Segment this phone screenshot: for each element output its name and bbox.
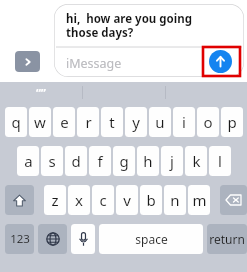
staticText: r (85, 112, 92, 132)
staticText: f (97, 151, 103, 171)
staticText: s (48, 151, 56, 171)
button[interactable]: o (197, 107, 219, 137)
button[interactable]: s (41, 146, 63, 176)
staticText: z (51, 190, 59, 210)
staticText: space (135, 231, 168, 247)
button[interactable]: q (5, 107, 27, 137)
staticText: e (60, 112, 69, 132)
staticText: j (170, 151, 174, 171)
button[interactable]: Switch keyboard (38, 224, 67, 254)
staticText: t (109, 112, 115, 132)
button[interactable]: p (221, 107, 243, 137)
button[interactable]: l (209, 146, 231, 176)
button[interactable]: 123 (5, 224, 34, 254)
staticText: c (99, 190, 107, 210)
staticText: y (132, 112, 140, 132)
staticText: q (11, 112, 21, 132)
button[interactable]: x (68, 185, 90, 215)
button[interactable]: Dictate (71, 224, 95, 254)
button[interactable]: space (99, 224, 203, 254)
staticText: a (24, 151, 33, 171)
staticText: n (170, 190, 180, 210)
staticText: “” (36, 85, 46, 100)
button[interactable]: y (125, 107, 147, 137)
button[interactable]: hi, how are you going those days? (54, 4, 244, 77)
button[interactable]: z (44, 185, 66, 215)
staticText: o (203, 112, 213, 132)
staticText: w (34, 112, 46, 132)
button[interactable]: v (116, 185, 138, 215)
button[interactable]: a (17, 146, 39, 176)
button[interactable]: u (149, 107, 171, 137)
staticText: g (119, 151, 129, 171)
button[interactable]: e (53, 107, 75, 137)
staticText: hi, how are you going those days? (66, 11, 192, 40)
button[interactable]: return (207, 224, 247, 254)
button[interactable]: b (140, 185, 162, 215)
staticText: h (143, 151, 153, 171)
staticText: i (182, 112, 186, 132)
button[interactable]: “” (0, 82, 82, 103)
button[interactable]: f (89, 146, 111, 176)
staticText: return (209, 231, 245, 247)
button[interactable]: w (29, 107, 51, 137)
staticText: x (75, 190, 83, 210)
button[interactable]: d (65, 146, 87, 176)
staticText: 123 (10, 231, 30, 247)
button[interactable]: j (161, 146, 183, 176)
staticText: iMessage (66, 55, 122, 72)
button[interactable]: n (164, 185, 186, 215)
button[interactable]: Show apps (15, 51, 40, 72)
button[interactable]: m (188, 185, 210, 215)
staticText: m (192, 190, 207, 210)
button[interactable]: k (185, 146, 207, 176)
button[interactable]: t (101, 107, 123, 137)
staticText: d (71, 151, 81, 171)
staticText: p (227, 112, 237, 132)
staticText: l (218, 151, 222, 171)
button[interactable]: Send (209, 50, 232, 73)
button[interactable]: Shift (5, 185, 34, 215)
button[interactable]: c (92, 185, 114, 215)
button[interactable]: g (113, 146, 135, 176)
staticText: k (192, 151, 201, 171)
button[interactable]: r (77, 107, 99, 137)
button[interactable]: Backspace (220, 185, 247, 215)
staticText: v (123, 190, 131, 210)
button[interactable]: h (137, 146, 159, 176)
staticText: b (146, 190, 156, 210)
staticText: u (155, 112, 165, 132)
button[interactable]: i (173, 107, 195, 137)
